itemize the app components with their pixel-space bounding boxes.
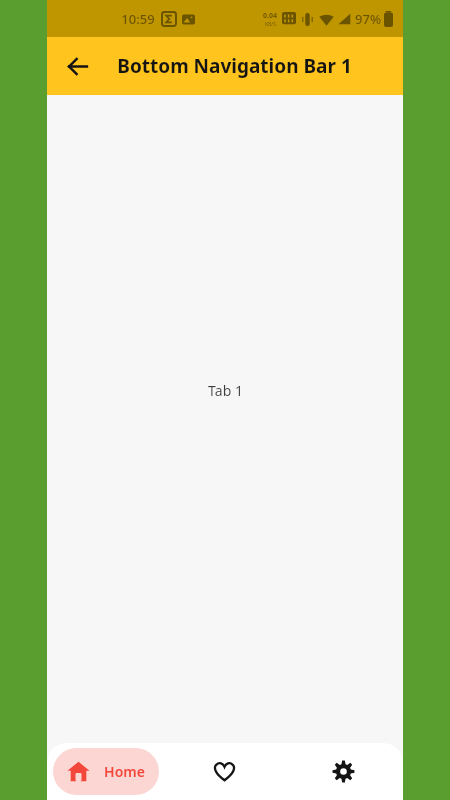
staticText: Tab 1 (208, 381, 243, 400)
button[interactable]: Settings (284, 743, 403, 800)
button[interactable]: Favorites (165, 743, 284, 800)
staticText: Bottom Navigation Bar 1 (117, 53, 352, 79)
staticText: 97% (355, 10, 381, 28)
staticText: 0.04 (263, 11, 277, 21)
staticText: Home (104, 762, 145, 781)
staticText: 10:59 (121, 10, 155, 28)
button[interactable]: Home (53, 748, 159, 795)
button[interactable]: Back (55, 44, 99, 88)
staticText: KB/S (265, 21, 276, 28)
